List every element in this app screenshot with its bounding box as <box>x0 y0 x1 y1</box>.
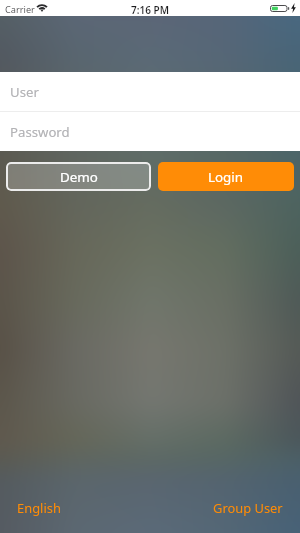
button[interactable]: English <box>17 499 61 517</box>
button[interactable]: Login <box>158 162 294 191</box>
staticText: 7:16 PM <box>0 3 300 17</box>
staticText: Group User <box>213 499 283 517</box>
staticText: Password <box>10 123 70 141</box>
staticText: Login <box>208 168 244 186</box>
staticText: Carrier <box>5 3 35 16</box>
button[interactable]: Password <box>0 112 300 151</box>
staticText: User <box>10 83 39 101</box>
staticText: English <box>17 499 61 517</box>
button[interactable]: Demo <box>6 162 151 191</box>
button[interactable]: User <box>0 72 300 111</box>
staticText: Demo <box>60 168 98 186</box>
button[interactable]: Group User <box>213 499 283 517</box>
